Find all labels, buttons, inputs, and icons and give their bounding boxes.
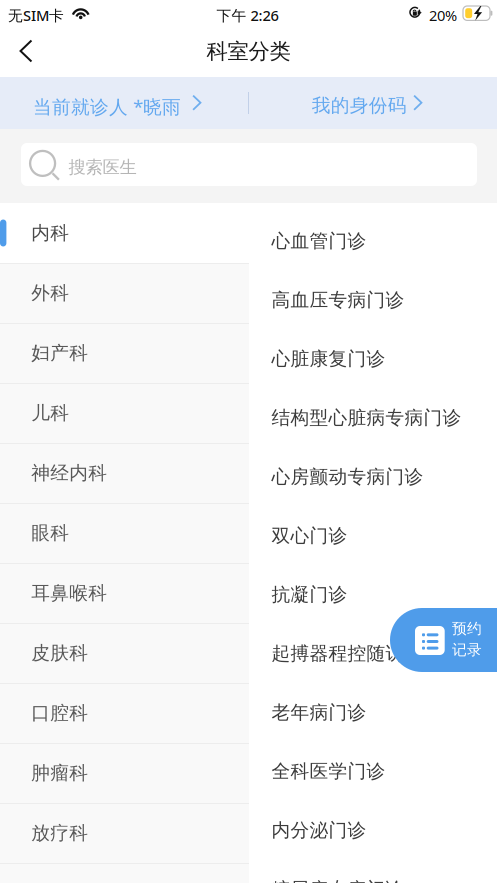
staticText: 无SIM卡 xyxy=(8,5,64,25)
staticText: 搜索医生 xyxy=(69,156,137,178)
staticText: 儿科 xyxy=(31,401,69,424)
staticText: 心房颤动专病门诊 xyxy=(271,465,423,488)
staticText: 结构型心脏病专病门诊 xyxy=(271,406,461,429)
staticText: 记录 xyxy=(452,641,482,659)
staticText: 神经内科 xyxy=(31,461,107,484)
staticText: 科室分类 xyxy=(206,38,290,65)
staticText: 眼科 xyxy=(31,521,69,544)
staticText: 预约 xyxy=(452,619,482,637)
button[interactable]: 老年病门诊 xyxy=(249,683,497,742)
button[interactable]: 口腔科 xyxy=(0,683,249,743)
staticText: 全科医学门诊 xyxy=(271,760,385,783)
button[interactable]: 搜索医生 xyxy=(21,143,477,186)
staticText: 放疗科 xyxy=(31,821,88,844)
button[interactable]: 心房颤动专病门诊 xyxy=(249,447,497,506)
button[interactable]: 儿科 xyxy=(0,383,249,443)
button[interactable]: 内科 xyxy=(0,203,249,263)
staticText: 老年病门诊 xyxy=(271,701,366,724)
button[interactable]: 全科医学门诊 xyxy=(249,742,497,801)
button[interactable]: 心血管门诊 xyxy=(249,212,497,270)
button[interactable]: 眼科 xyxy=(0,503,249,563)
button[interactable]: 糖尿病专病门诊 xyxy=(249,860,497,883)
staticText: 我的身份码 xyxy=(312,94,407,117)
staticText: 内科 xyxy=(31,221,69,244)
staticText: 外科 xyxy=(31,281,69,304)
staticText: 高血压专病门诊 xyxy=(271,288,404,311)
button[interactable]: 外科 xyxy=(0,263,249,323)
button[interactable]: 我的身份码 xyxy=(248,77,497,129)
staticText: 20% xyxy=(429,5,457,25)
button[interactable]: 双心门诊 xyxy=(249,506,497,565)
button[interactable]: 心脏康复门诊 xyxy=(249,329,497,388)
staticText: 妇产科 xyxy=(31,341,88,364)
staticText: 糖尿病专病门诊 xyxy=(271,878,404,883)
button[interactable]: 结构型心脏病专病门诊 xyxy=(249,388,497,447)
button[interactable]: 皮肤科 xyxy=(0,623,249,683)
staticText: 起搏器程控随访门诊 xyxy=(271,642,442,665)
button[interactable]: 抗凝门诊 xyxy=(249,565,497,624)
staticText: 耳鼻喉科 xyxy=(31,581,107,604)
staticText: 内分泌门诊 xyxy=(271,819,366,842)
button[interactable]: 肿瘤科 xyxy=(0,743,249,803)
button[interactable]: 耳鼻喉科 xyxy=(0,563,249,623)
button[interactable]: 放疗科 xyxy=(0,803,249,863)
button[interactable]: 高血压专病门诊 xyxy=(249,270,497,329)
staticText: 肿瘤科 xyxy=(31,761,88,784)
button[interactable]: 返回 xyxy=(3,28,49,74)
staticText: 下午 2:26 xyxy=(216,5,278,25)
staticText: 皮肤科 xyxy=(31,641,88,664)
staticText: 口腔科 xyxy=(31,701,88,724)
button[interactable]: 起搏器程控随访门诊 xyxy=(249,624,497,683)
button[interactable]: 内分泌门诊 xyxy=(249,801,497,860)
staticText: 当前就诊人 *晓雨 xyxy=(33,94,181,119)
staticText: 心脏康复门诊 xyxy=(271,347,385,370)
staticText: 心血管门诊 xyxy=(271,230,366,252)
button[interactable]: 预约 xyxy=(390,608,497,672)
staticText: 抗凝门诊 xyxy=(271,583,347,606)
button[interactable]: 妇产科 xyxy=(0,323,249,383)
staticText: 双心门诊 xyxy=(271,524,347,547)
button[interactable]: 当前就诊人 *晓雨 xyxy=(0,77,248,129)
button[interactable]: 神经内科 xyxy=(0,443,249,503)
